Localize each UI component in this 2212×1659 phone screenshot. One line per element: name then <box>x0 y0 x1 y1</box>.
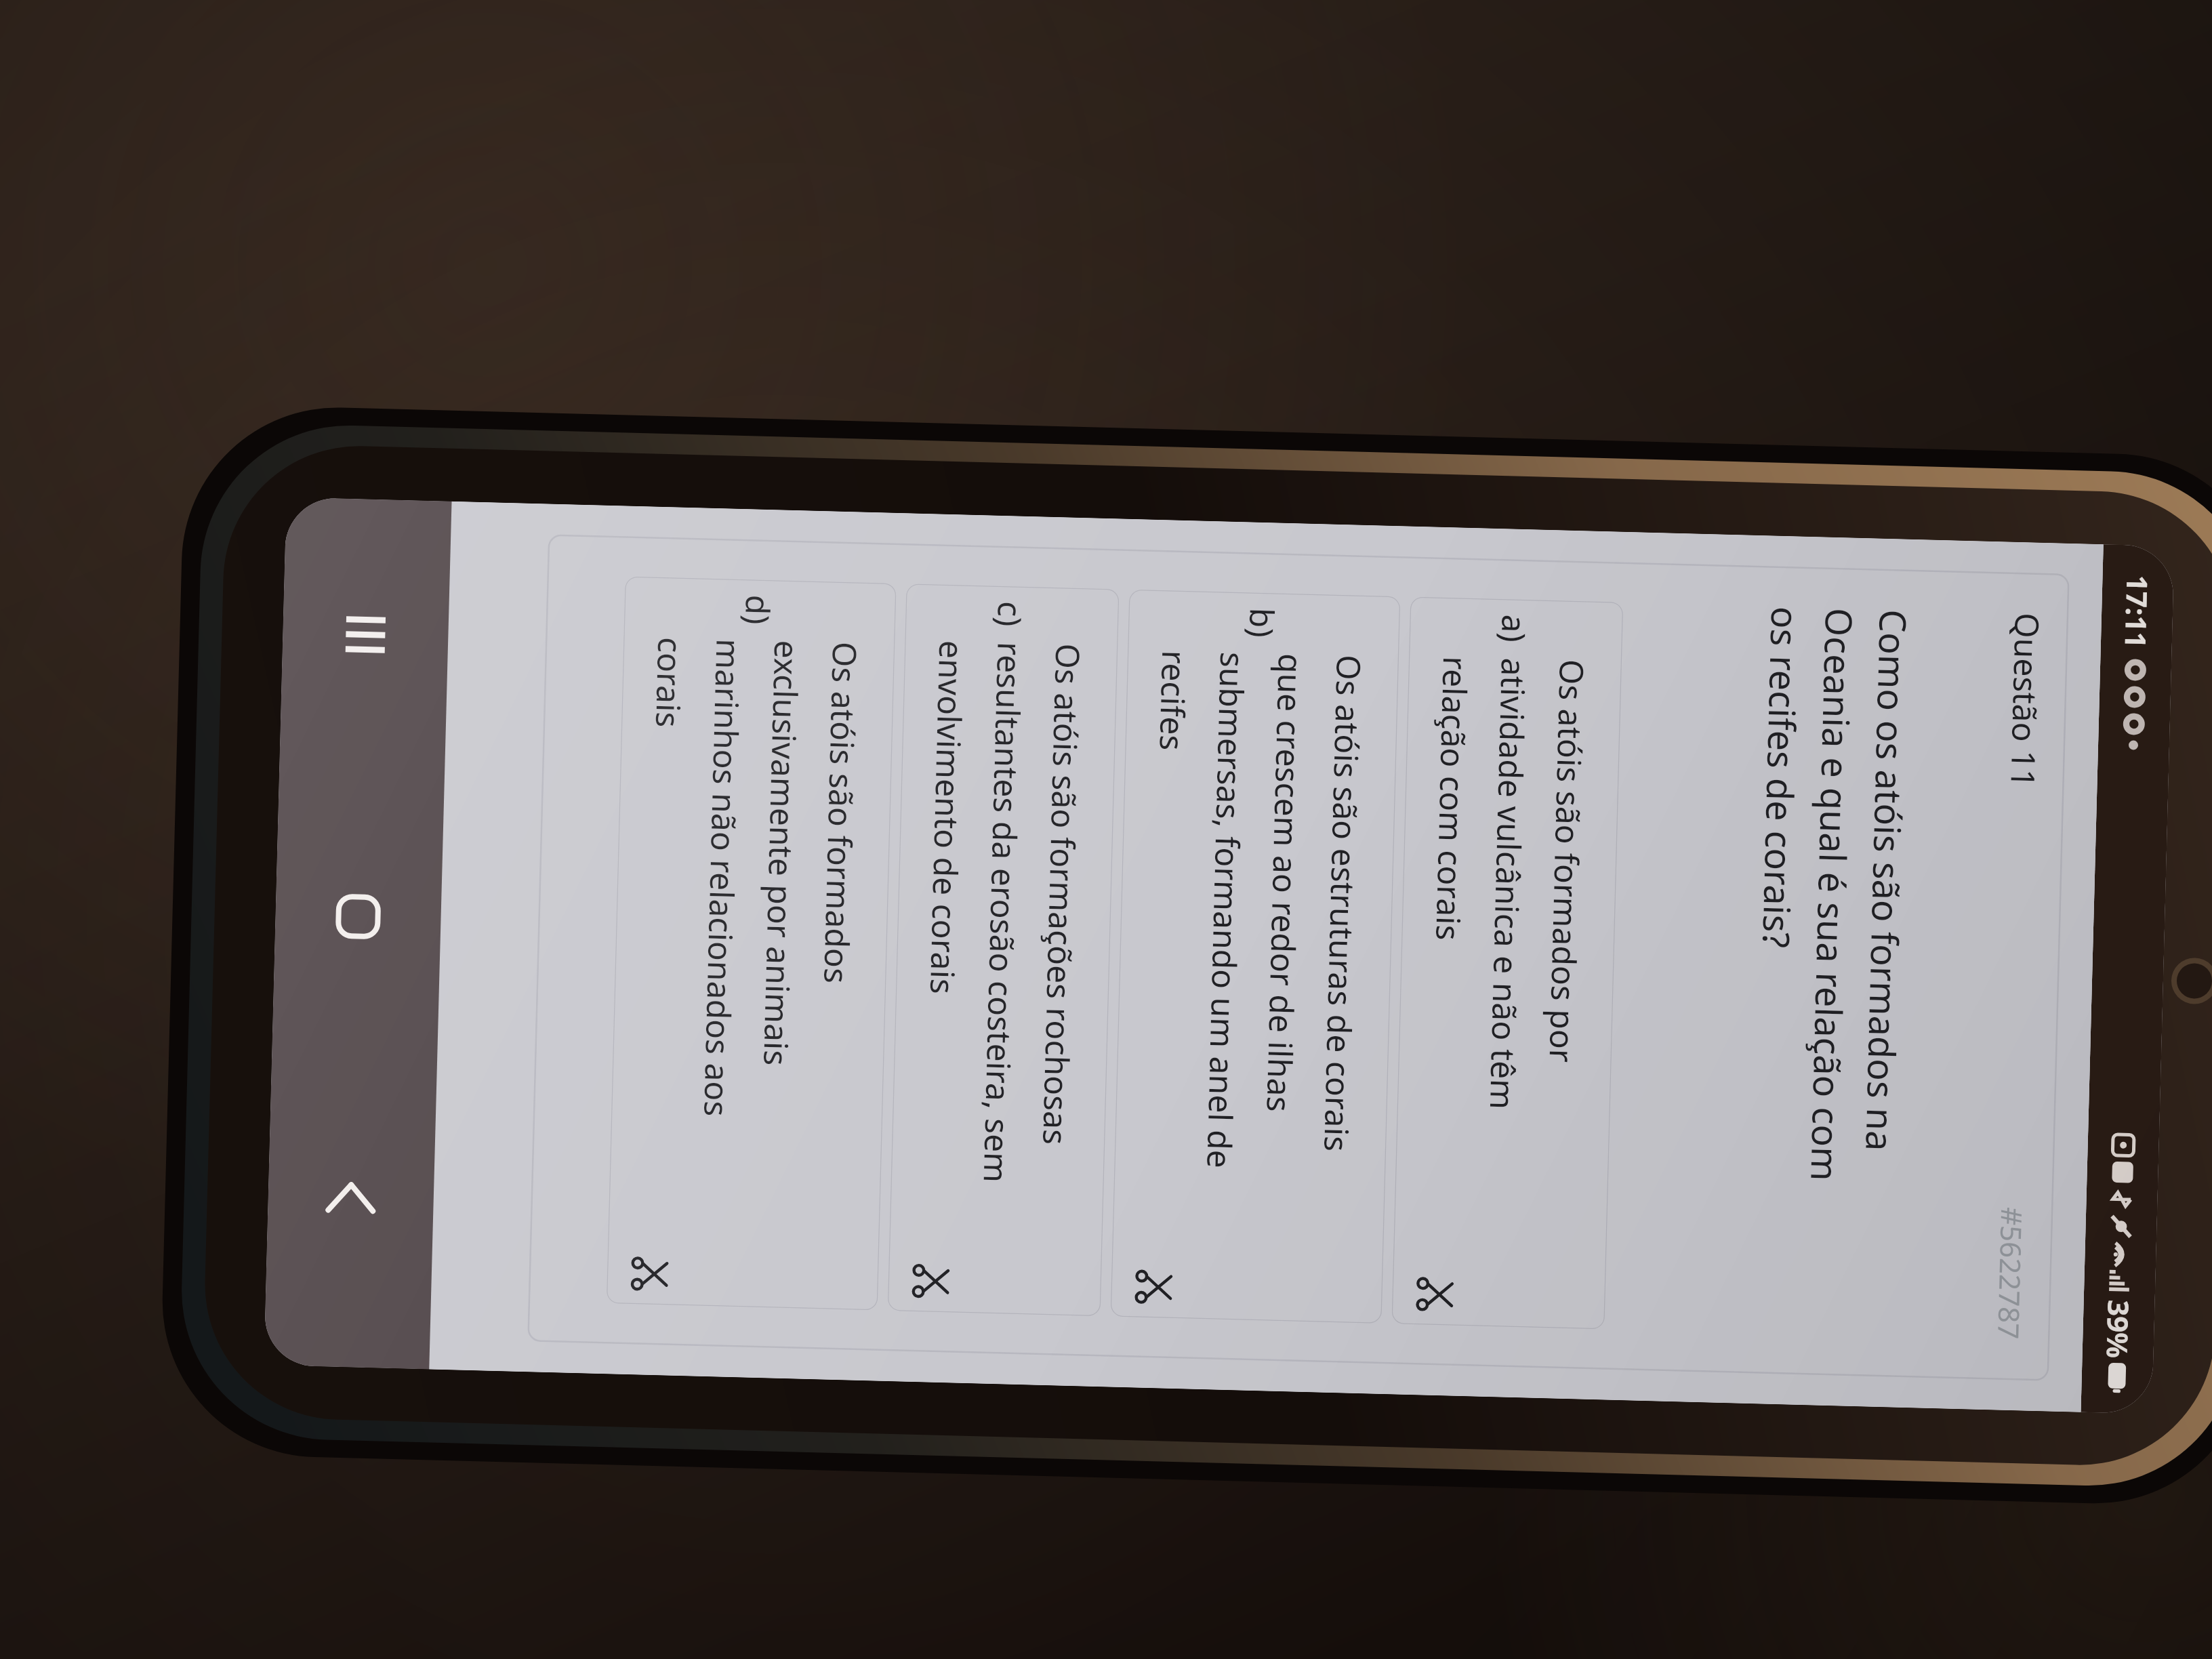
button[interactable]: a) <box>1392 597 1623 1329</box>
other: Cortar questão <box>631 1255 669 1293</box>
staticText: Os atóis são formados por atividade vulc… <box>1417 656 1595 1273</box>
staticText: Os atóis são estruturas de corais que cr… <box>1136 650 1372 1267</box>
staticText: Como os atóis são formados na Oceania e … <box>1746 606 1919 1183</box>
button[interactable]: Recentes <box>303 572 428 697</box>
button[interactable]: Início <box>296 854 421 979</box>
staticText: 39% <box>2098 1299 2139 1359</box>
button[interactable]: d) <box>606 576 896 1310</box>
button[interactable]: b) <box>1110 590 1400 1323</box>
staticText: Questão 11 <box>2001 612 2050 788</box>
staticText: Os atóis são formações rochosas resultan… <box>913 640 1091 1260</box>
staticText: 17:11 <box>2117 575 2157 649</box>
button[interactable]: Voltar <box>288 1135 413 1260</box>
staticText: a) <box>1492 614 1537 643</box>
other: Cortar questão <box>912 1262 950 1300</box>
other: Cortar questão <box>1135 1268 1173 1306</box>
other: Cortar questão <box>1416 1276 1454 1313</box>
staticText: #5622787 <box>1990 1207 2032 1340</box>
staticText: c) <box>988 601 1033 628</box>
staticText: d) <box>736 594 781 625</box>
button[interactable]: c) <box>888 584 1119 1316</box>
staticText: b) <box>1240 607 1285 638</box>
staticText: Os atóis são formados exclusivamente por… <box>632 637 868 1254</box>
